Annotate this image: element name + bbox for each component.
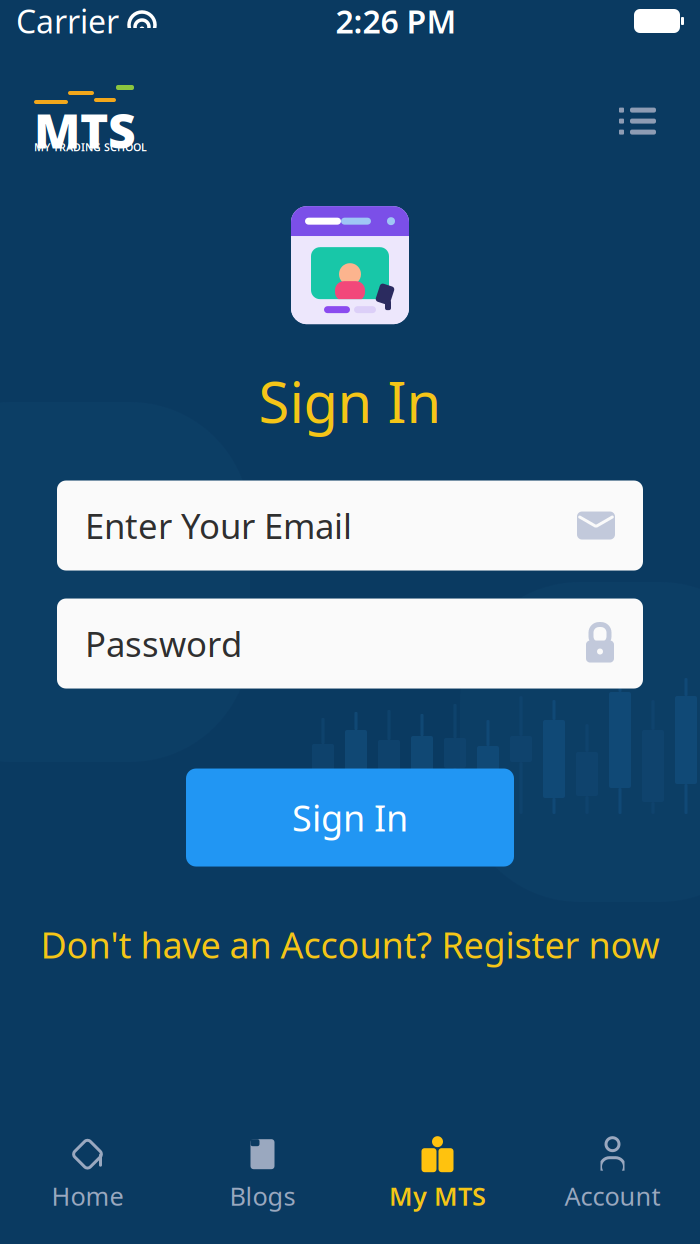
- staticText: Enter Your Email: [85, 502, 352, 548]
- button[interactable]: Password: [57, 598, 643, 688]
- staticText: Sign In: [292, 794, 408, 841]
- button[interactable]: Don't have an Account? Register now: [28, 914, 671, 974]
- button[interactable]: Home: [0, 1131, 175, 1219]
- staticText: Carrier: [16, 0, 119, 42]
- button[interactable]: Menu: [609, 98, 666, 145]
- button[interactable]: Account: [525, 1131, 700, 1219]
- staticText: Sign In: [258, 364, 441, 439]
- staticText: Blogs: [229, 1179, 295, 1213]
- staticText: Account: [564, 1179, 660, 1213]
- staticText: MY TRADING SCHOOL: [34, 140, 147, 154]
- staticText: 2:26 PM: [335, 0, 456, 42]
- staticText: Password: [85, 620, 242, 666]
- button[interactable]: Blogs: [175, 1131, 350, 1219]
- staticText: My MTS: [389, 1179, 486, 1213]
- button[interactable]: Enter Your Email: [57, 480, 643, 570]
- button[interactable]: My MTS: [350, 1131, 525, 1219]
- staticText: MTS: [34, 98, 136, 162]
- staticText: Don't have an Account? Register now: [40, 920, 659, 968]
- staticText: Home: [51, 1179, 123, 1213]
- button[interactable]: Sign In: [186, 768, 514, 866]
